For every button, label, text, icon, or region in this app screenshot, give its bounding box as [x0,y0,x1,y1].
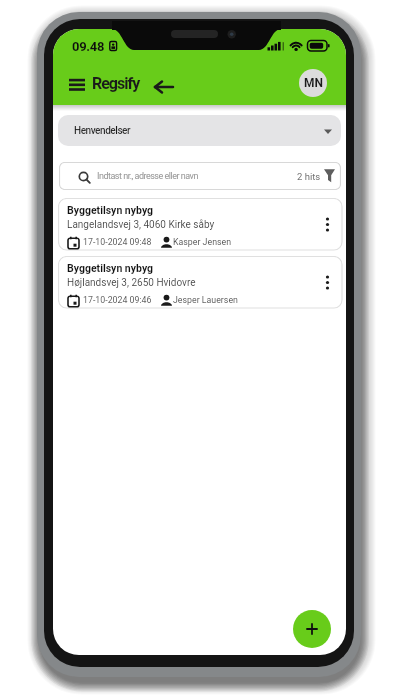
button[interactable]: Henvendelser [58,115,341,146]
staticText: Henvendelser [74,125,131,137]
button[interactable] [318,268,338,296]
staticText: Indtast nr., adresse eller navn [97,171,198,182]
staticText: Regsify [92,74,140,93]
button[interactable] [293,610,331,648]
staticText: Højlandsvej 3, 2650 Hvidovre [67,277,196,289]
button[interactable]: Byggetilsyn nybyg [58,256,343,309]
staticText: 2 hits [297,171,321,182]
staticText: 09.48 [72,39,105,54]
staticText: 17-10-2024 09:48 [83,237,152,247]
button[interactable] [65,75,89,95]
staticText: Langelandsvej 3, 4060 Kirke såby [67,219,215,231]
button[interactable]: MN [299,69,327,97]
button[interactable] [318,210,338,238]
staticText: Kasper Jensen [173,237,232,247]
staticText: Byggetilsyn nybyg [67,262,154,274]
staticText: Jesper Lauersen [173,295,238,305]
staticText: 17-10-2024 09:46 [83,295,152,305]
button[interactable]: Byggetilsyn nybyg [58,198,343,251]
button[interactable]: Indtast nr., adresse eller navn [59,162,341,190]
button[interactable] [152,80,176,94]
button[interactable] [321,165,339,187]
staticText: Byggetilsyn nybyg [67,204,154,216]
staticText: MN [304,76,323,90]
